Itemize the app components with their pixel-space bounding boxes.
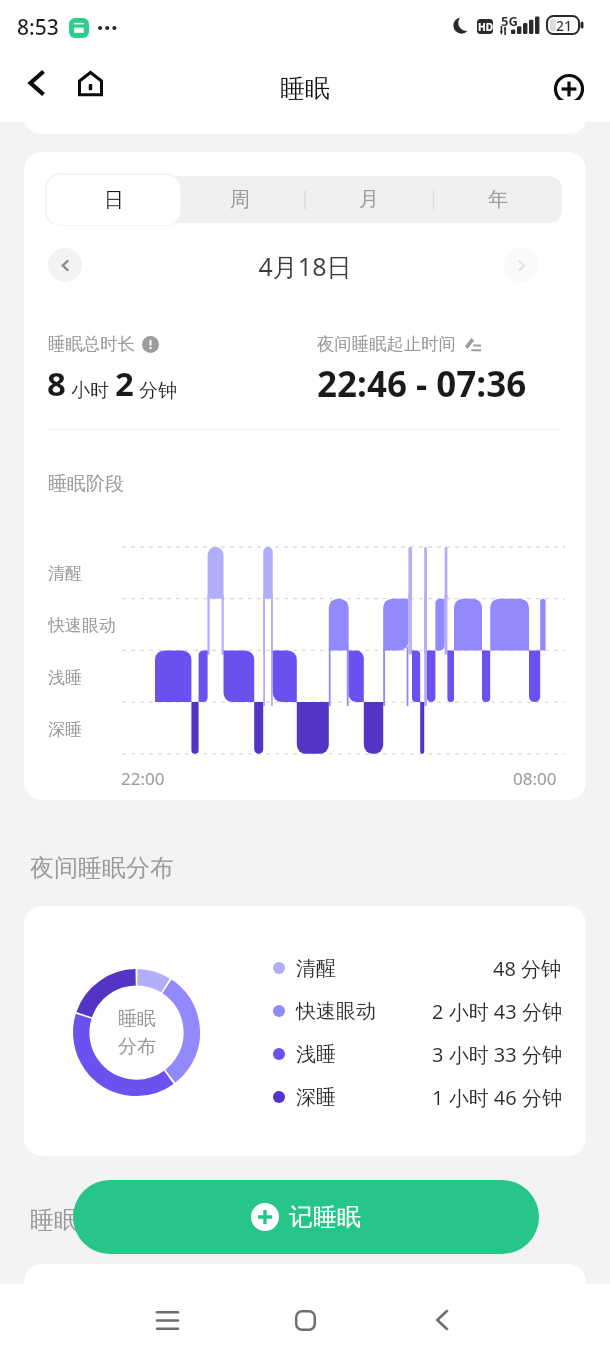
staticText: 8:53 bbox=[17, 13, 59, 42]
staticText: 睡眠 bbox=[118, 1007, 156, 1031]
button[interactable]: 浅睡 bbox=[273, 1038, 562, 1070]
button[interactable]: 清醒 bbox=[273, 952, 562, 984]
staticText: 分钟 bbox=[139, 379, 177, 403]
staticText: 清醒 bbox=[296, 956, 336, 981]
button[interactable]: Home bbox=[65, 58, 115, 108]
staticText: 22:00 bbox=[121, 767, 165, 790]
staticText: 日 bbox=[104, 188, 124, 213]
staticText: 8 bbox=[47, 361, 66, 406]
button[interactable]: Previous day bbox=[48, 248, 82, 282]
staticText: 睡眠阶段 bbox=[48, 472, 124, 496]
staticText: 年 bbox=[488, 187, 508, 212]
button[interactable]: 深睡 bbox=[273, 1081, 562, 1113]
staticText: 浅睡 bbox=[48, 667, 82, 688]
staticText: 小时 bbox=[71, 379, 109, 403]
staticText: 分布 bbox=[118, 1035, 156, 1059]
staticText: 浅睡 bbox=[296, 1042, 336, 1067]
staticText: 08:00 bbox=[513, 767, 557, 790]
staticText: 月 bbox=[359, 187, 379, 212]
button[interactable]: 周 bbox=[176, 176, 304, 223]
staticText: 睡眠 bbox=[30, 1205, 78, 1235]
staticText: 睡眠 bbox=[280, 73, 330, 104]
staticText: 快速眼动 bbox=[296, 999, 376, 1024]
staticText: 2 小时 43 分钟 bbox=[432, 998, 562, 1025]
staticText: 深睡 bbox=[48, 719, 82, 740]
staticText: 21 bbox=[556, 16, 573, 35]
staticText: 4月18日 bbox=[24, 249, 586, 283]
staticText: 快速眼动 bbox=[48, 615, 116, 636]
staticText: 1 小时 46 分钟 bbox=[432, 1084, 562, 1111]
button[interactable]: 日 bbox=[48, 176, 176, 223]
staticText: 睡眠总时长 bbox=[48, 333, 135, 355]
staticText: 周 bbox=[230, 187, 250, 212]
button[interactable]: Recent apps bbox=[143, 1296, 191, 1344]
staticText: 夜间睡眠分布 bbox=[30, 853, 174, 883]
button[interactable]: Home bbox=[281, 1296, 329, 1344]
staticText: 5G bbox=[501, 12, 518, 30]
button[interactable]: Back bbox=[12, 58, 62, 108]
button[interactable]: 记睡眠 bbox=[73, 1180, 539, 1254]
button[interactable]: Add bbox=[545, 65, 593, 113]
staticText: 3 小时 33 分钟 bbox=[432, 1041, 562, 1068]
staticText: 清醒 bbox=[48, 563, 82, 584]
staticText: HD bbox=[478, 20, 493, 34]
staticText: 48 分钟 bbox=[493, 955, 562, 982]
staticText: 深睡 bbox=[296, 1085, 336, 1110]
staticText: 2 bbox=[115, 361, 134, 406]
staticText: 日 bbox=[102, 187, 122, 212]
button[interactable]: Back bbox=[418, 1296, 466, 1344]
button[interactable]: 日 bbox=[47, 175, 180, 225]
staticText: 记睡眠 bbox=[289, 1202, 361, 1232]
button[interactable]: 月 bbox=[304, 176, 433, 223]
staticText: 夜间睡眠起止时间 bbox=[317, 333, 457, 355]
button[interactable]: 快速眼动 bbox=[273, 995, 562, 1027]
staticText: 22:46 - 07:36 bbox=[317, 360, 527, 408]
button[interactable]: 年 bbox=[433, 176, 562, 223]
button[interactable]: Next day bbox=[504, 248, 538, 282]
